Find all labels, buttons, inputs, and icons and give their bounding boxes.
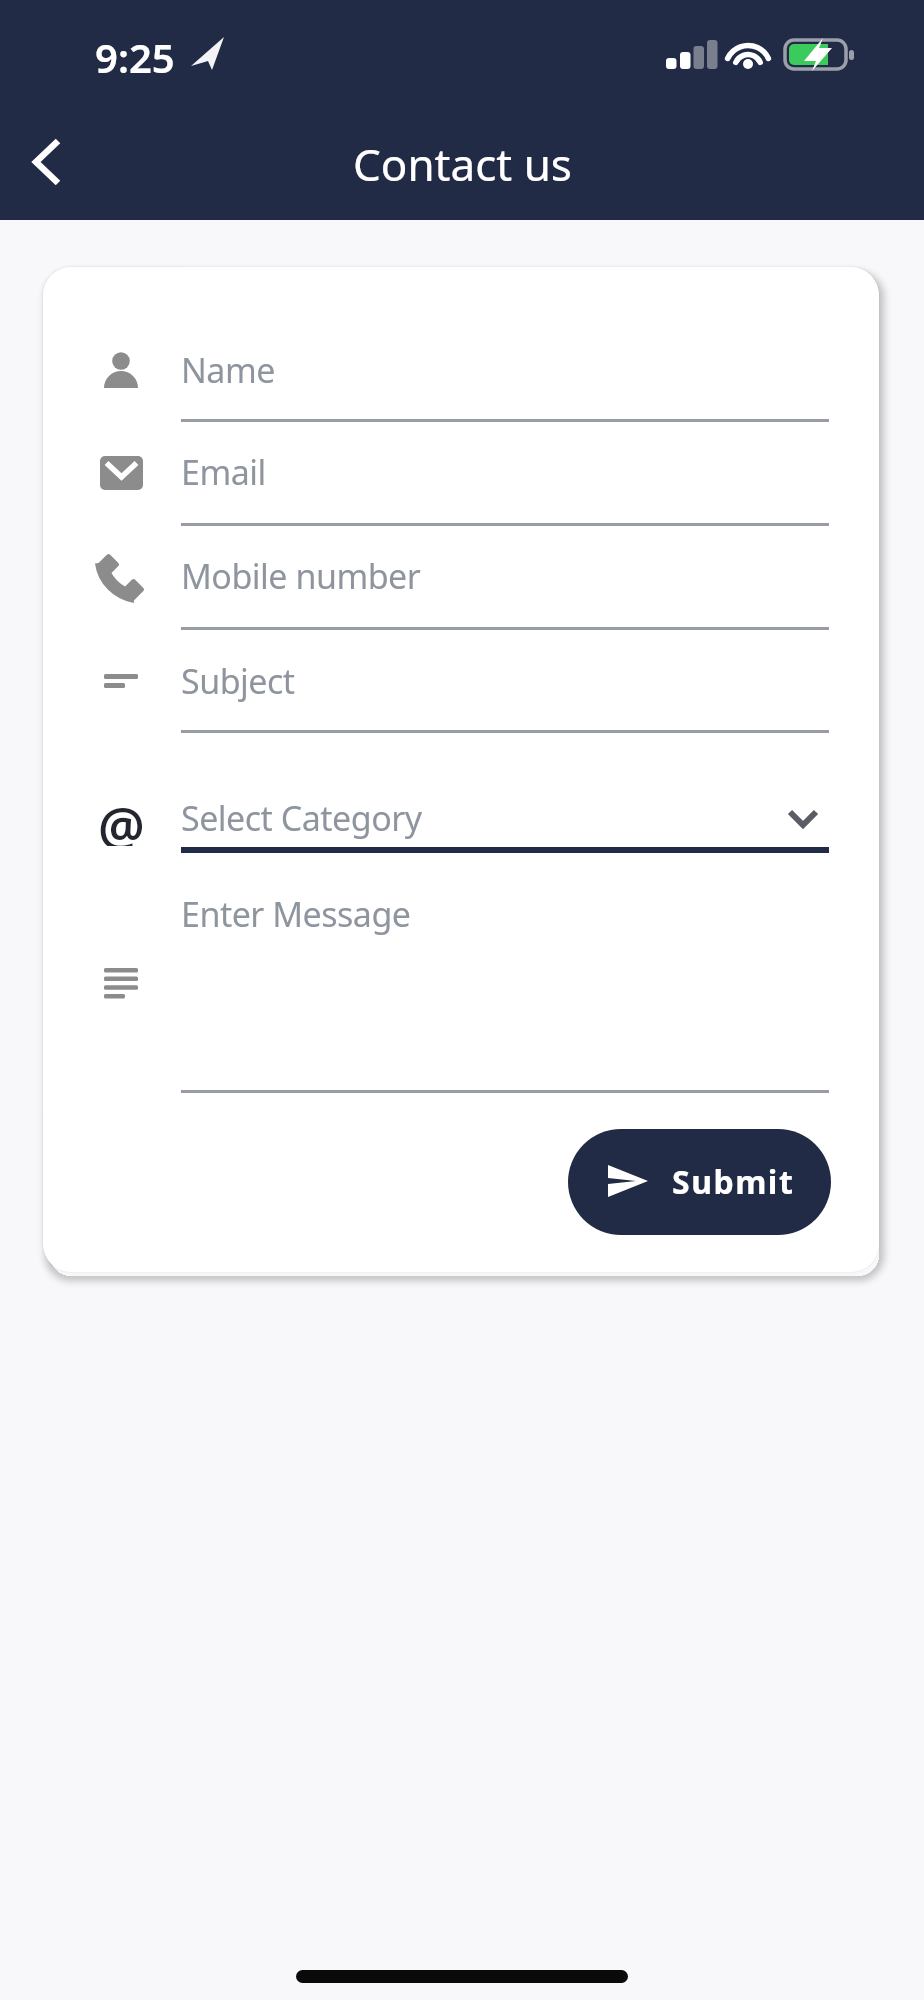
staticText: @ [98,790,145,846]
staticText: Subject [181,658,295,704]
staticText: Submit [672,1160,795,1204]
staticText: 9:25 [95,30,175,74]
staticText: Email [181,449,266,495]
staticText: Name [181,347,275,393]
button[interactable]: Name [181,344,741,396]
button[interactable]: Select Category [181,792,741,844]
button[interactable]: Mobile number [181,550,741,602]
button[interactable]: Subject [181,655,741,707]
staticText: Enter Message [181,891,411,937]
button[interactable]: Email [181,446,741,498]
button[interactable] [16,122,80,202]
button[interactable]: Enter Message [181,888,741,940]
staticText: Select Category [181,795,422,841]
button[interactable]: Submit [568,1129,831,1235]
staticText: Contact us [353,134,572,194]
staticText: Mobile number [181,553,421,599]
